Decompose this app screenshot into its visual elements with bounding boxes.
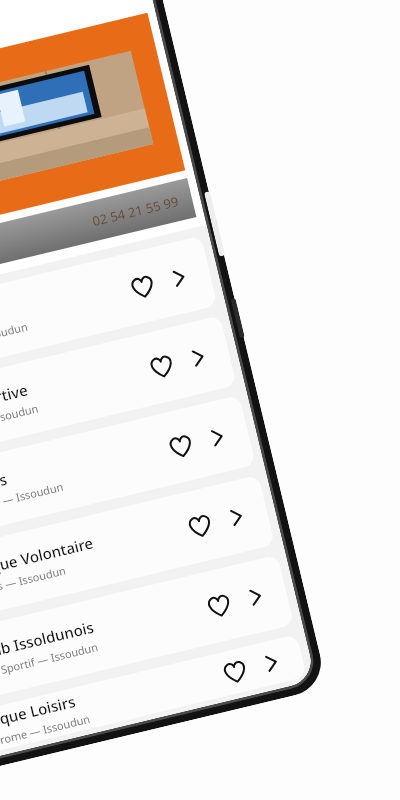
staticText: Gymnastique Volontaire bbox=[0, 532, 96, 592]
staticText: Boulodrome — Issoudun bbox=[0, 711, 92, 756]
button[interactable]: Aquarelle du Berry bbox=[0, 235, 218, 390]
button[interactable]: Association Sportive bbox=[0, 315, 237, 470]
button[interactable]: Open details bbox=[159, 257, 200, 298]
button[interactable]: Gymnastique Volontaire bbox=[0, 475, 275, 630]
staticText: Pétanque Loisirs bbox=[0, 691, 77, 738]
staticText: Salle des Fêtes — Issoudun bbox=[0, 562, 68, 610]
button[interactable]: Favourite bbox=[177, 503, 222, 549]
button[interactable]: Open details bbox=[197, 417, 238, 458]
button[interactable]: Favourite bbox=[138, 343, 184, 389]
staticText: Club de Tennis bbox=[0, 469, 10, 513]
button[interactable]: Pétanque Loisirs bbox=[0, 634, 307, 762]
staticText: Route de Bourges — Issoudun bbox=[0, 479, 65, 530]
button[interactable]: Open details bbox=[251, 642, 292, 683]
staticText: 02 54 21 55 99 bbox=[90, 192, 180, 230]
button[interactable]: Favourite bbox=[157, 423, 203, 469]
button[interactable]: Club de Tennis bbox=[0, 395, 256, 550]
staticText: Association Sportive bbox=[0, 379, 30, 433]
button[interactable]: Favourite bbox=[196, 583, 242, 628]
staticText: Complexe Sportif — Issoudun bbox=[0, 639, 100, 689]
staticText: Judo Club Issoldunois bbox=[0, 616, 96, 672]
staticText: 3 Rue des Champs — Issoudun bbox=[0, 319, 29, 371]
button[interactable]: Open details bbox=[235, 576, 276, 617]
button[interactable]: Favourite bbox=[212, 649, 257, 694]
button[interactable]: Open details bbox=[178, 337, 219, 378]
button[interactable]: Favourite bbox=[119, 264, 165, 309]
staticText: 12 Av. de Verdun — Issoudun bbox=[0, 400, 40, 450]
button[interactable]: Judo Club Issoldunois bbox=[0, 554, 294, 709]
button[interactable]: Open details bbox=[216, 496, 257, 537]
button[interactable]: BipTV bbox=[0, 13, 196, 302]
